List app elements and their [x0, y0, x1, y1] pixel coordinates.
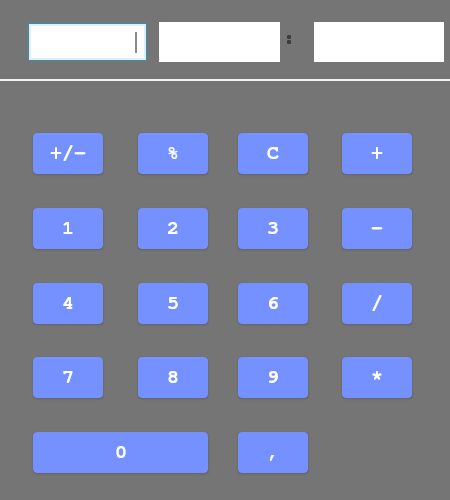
staticText: ,: [267, 442, 279, 462]
button[interactable]: 4: [33, 283, 103, 324]
staticText: 2: [167, 218, 179, 238]
button[interactable]: *: [342, 357, 412, 398]
staticText: 8: [167, 367, 179, 387]
button[interactable]: C: [238, 133, 308, 174]
button[interactable]: 5: [138, 283, 208, 324]
button[interactable]: 7: [33, 357, 103, 398]
button[interactable]: Text field: [31, 26, 144, 58]
staticText: /: [371, 293, 383, 313]
staticText: %: [167, 143, 179, 163]
button[interactable]: 2: [138, 208, 208, 249]
staticText: 9: [267, 367, 279, 387]
staticText: C: [267, 143, 279, 163]
staticText: 6: [267, 293, 279, 313]
button[interactable]: −: [342, 208, 412, 249]
staticText: −: [371, 218, 383, 238]
staticText: +/−: [50, 143, 86, 163]
staticText: 0: [115, 442, 127, 462]
staticText: 7: [62, 367, 74, 387]
staticText: 1: [62, 218, 74, 238]
button[interactable]: 6: [238, 283, 308, 324]
staticText: 3: [267, 218, 279, 238]
button[interactable]: 1: [33, 208, 103, 249]
button[interactable]: 3: [238, 208, 308, 249]
button[interactable]: ,: [238, 432, 308, 473]
staticText: 4: [62, 293, 74, 313]
staticText: 5: [167, 293, 179, 313]
button[interactable]: 8: [138, 357, 208, 398]
button[interactable]: +: [342, 133, 412, 174]
button[interactable]: 0: [33, 432, 208, 473]
button[interactable]: /: [342, 283, 412, 324]
button[interactable]: +/−: [33, 133, 103, 174]
staticText: *: [371, 367, 383, 387]
button[interactable]: 9: [238, 357, 308, 398]
staticText: +: [371, 143, 383, 163]
button[interactable]: %: [138, 133, 208, 174]
